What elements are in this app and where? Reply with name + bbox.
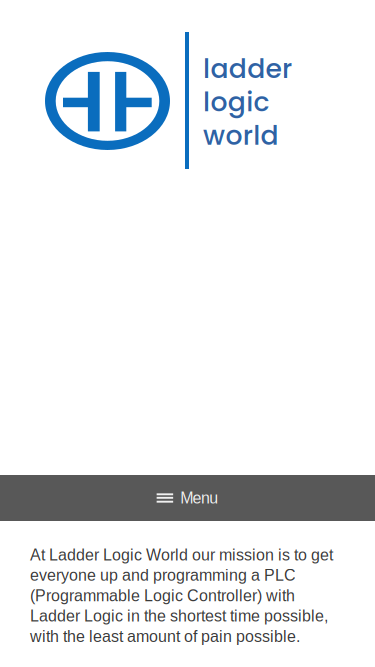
staticText: Menu [180, 489, 218, 507]
staticText: world [203, 117, 279, 154]
staticText: At Ladder Logic World our mission is to … [30, 546, 333, 645]
button[interactable]: Menu [0, 475, 375, 521]
staticText: ladder [203, 50, 292, 87]
staticText: logic [203, 83, 270, 121]
